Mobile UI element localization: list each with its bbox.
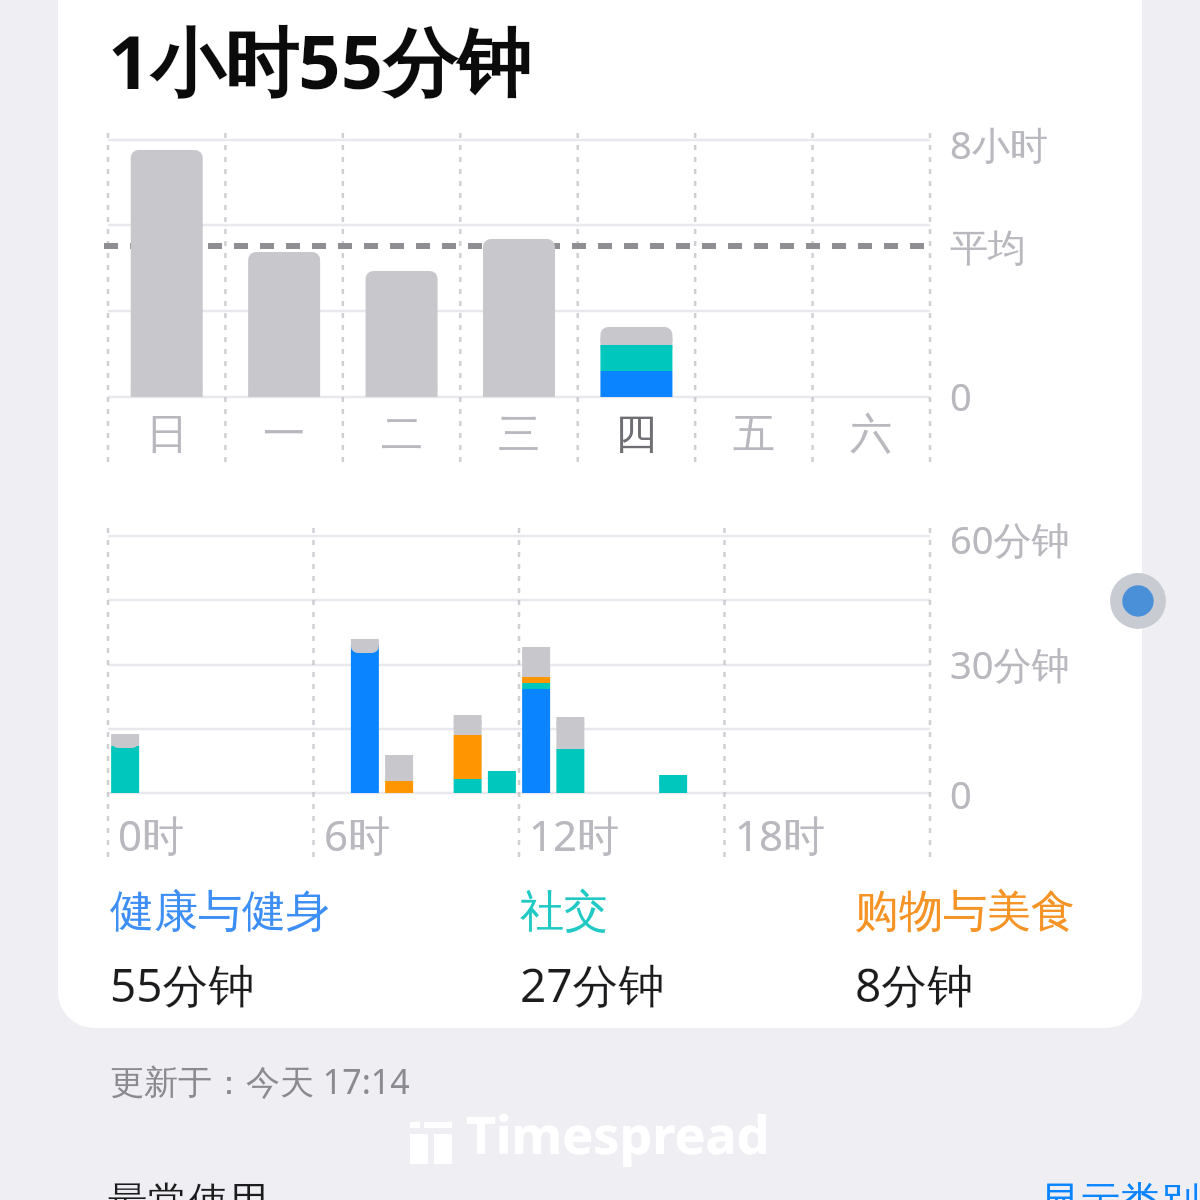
staticText: 社交 xyxy=(520,884,608,939)
staticText: 1小时55分钟 xyxy=(108,10,531,111)
staticText: Timespread xyxy=(466,1098,770,1169)
staticText: 30分钟 xyxy=(950,638,1070,690)
staticText: 27分钟 xyxy=(520,953,665,1016)
staticText: 55分钟 xyxy=(110,953,255,1016)
staticText: 6时 xyxy=(324,806,391,863)
staticText: 显示类别 xyxy=(1040,1176,1200,1200)
staticText: 一 xyxy=(263,408,305,461)
staticText: 最常使用 xyxy=(108,1176,268,1200)
button[interactable]: 购物与美食 xyxy=(855,884,1075,1016)
staticText: 0 xyxy=(950,768,972,820)
staticText: 健康与健身 xyxy=(110,884,330,939)
staticText: 60分钟 xyxy=(950,513,1070,565)
staticText: 8小时 xyxy=(950,118,1048,170)
staticText: 0时 xyxy=(118,806,185,863)
staticText: 三 xyxy=(498,408,540,461)
staticText: 18时 xyxy=(735,806,826,863)
staticText: 二 xyxy=(381,408,423,461)
staticText: 平均 xyxy=(950,224,1026,272)
staticText: 8分钟 xyxy=(855,953,974,1016)
staticText: 五 xyxy=(733,408,775,461)
button[interactable]: Scroll indicator xyxy=(1110,573,1166,629)
staticText: 四 xyxy=(615,408,657,461)
staticText: 更新于：今天 17:14 xyxy=(110,1058,410,1104)
button[interactable] xyxy=(58,0,1142,1028)
staticText: 0 xyxy=(950,370,972,422)
button[interactable]: 社交 xyxy=(520,884,665,1016)
staticText: 六 xyxy=(850,408,892,461)
button[interactable]: 健康与健身 xyxy=(110,884,330,1016)
staticText: 购物与美食 xyxy=(855,884,1075,939)
staticText: 12时 xyxy=(529,806,620,863)
staticText: 日 xyxy=(146,408,188,461)
